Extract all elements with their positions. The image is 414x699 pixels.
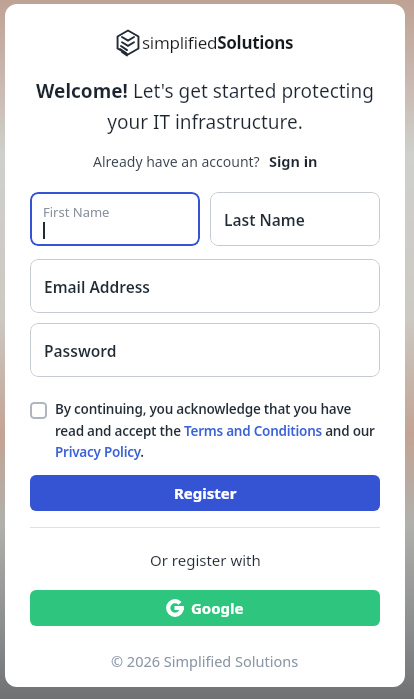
button[interactable]: Sign in	[269, 151, 318, 171]
staticText: simplifiedSolutions	[142, 31, 294, 54]
button[interactable]: Register	[30, 475, 380, 511]
button[interactable]: Email Address	[30, 259, 380, 313]
staticText: Register	[174, 483, 237, 503]
button[interactable]: First Name	[30, 192, 200, 246]
staticText: © 2026 Simplified Solutions	[111, 651, 299, 671]
staticText: Google	[191, 598, 244, 618]
staticText: Email Address	[44, 276, 150, 297]
button[interactable]: Google	[30, 590, 380, 626]
staticText: First Name	[43, 203, 110, 221]
staticText: Last Name	[224, 209, 305, 230]
staticText: Already have an account?	[93, 152, 260, 171]
staticText: Sign in	[269, 151, 318, 171]
staticText: By continuing, you acknowledge that you …	[55, 400, 375, 461]
button[interactable]: Last Name	[210, 192, 380, 246]
staticText: Welcome! Let's get started protecting yo…	[30, 78, 380, 134]
staticText: Or register with	[150, 550, 261, 570]
button[interactable]: Password	[30, 323, 380, 377]
staticText: Password	[44, 340, 117, 361]
button[interactable]	[30, 402, 47, 419]
